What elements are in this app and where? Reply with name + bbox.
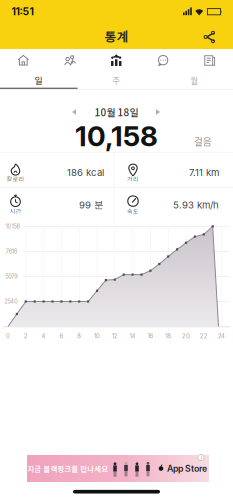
staticText: 22 [200, 332, 208, 340]
button[interactable]: 월 [155, 72, 233, 88]
staticText: 월 [190, 74, 198, 86]
staticText: 6 [59, 332, 63, 340]
button[interactable]: 일 [0, 72, 78, 88]
staticText: 24 [218, 332, 225, 340]
staticText: 5.93 km/h [173, 199, 219, 211]
staticText: 지금 블랙핑크를 만나세요 [27, 463, 108, 474]
staticText: i [200, 454, 201, 461]
staticText: 거리 [127, 174, 139, 183]
staticText: 5079 [5, 273, 17, 280]
staticText: 7618 [6, 248, 17, 255]
staticText: 18 [165, 332, 171, 340]
staticText: 주 [112, 74, 120, 86]
button[interactable]: 공유 [197, 25, 221, 49]
staticText: 걸음 [194, 134, 212, 148]
button[interactable]: 다음 날짜 [150, 104, 166, 120]
button[interactable]: 친구 [47, 49, 93, 72]
button[interactable]: 이전 날짜 [66, 104, 82, 120]
staticText: 0 [6, 332, 10, 340]
staticText: 4 [42, 332, 46, 340]
staticText: 16 [147, 332, 153, 340]
staticText: 칼로리 [6, 174, 24, 183]
staticText: 10158 [5, 223, 19, 230]
button[interactable]: 통계 [93, 49, 140, 72]
button[interactable]: 뉴스 [186, 49, 233, 72]
button[interactable]: 주 [78, 72, 155, 88]
staticText: 2 [24, 332, 28, 340]
staticText: 10,158 [75, 119, 158, 153]
staticText: 8 [77, 332, 81, 340]
staticText: 12 [112, 332, 118, 340]
staticText: 14 [130, 332, 136, 340]
staticText: 10월 18일 [94, 105, 138, 119]
staticText: 속도 [127, 207, 139, 215]
staticText: 통계 [104, 27, 128, 45]
staticText: 2540 [4, 298, 18, 305]
staticText: 일 [35, 74, 43, 86]
button[interactable]: 홈 [0, 49, 47, 72]
button[interactable]: 채팅 [140, 49, 186, 72]
staticText: 20 [182, 332, 190, 340]
staticText: 시간 [9, 207, 21, 215]
staticText: App Store [167, 463, 207, 474]
button[interactable]: 지금 블랙핑크를 만나세요 [27, 455, 209, 482]
staticText: 11:51 [11, 5, 33, 18]
staticText: 186 kcal [67, 167, 104, 178]
staticText: 7.11 km [189, 167, 219, 178]
staticText: 99 분 [79, 199, 104, 211]
staticText: 10 [94, 332, 100, 340]
